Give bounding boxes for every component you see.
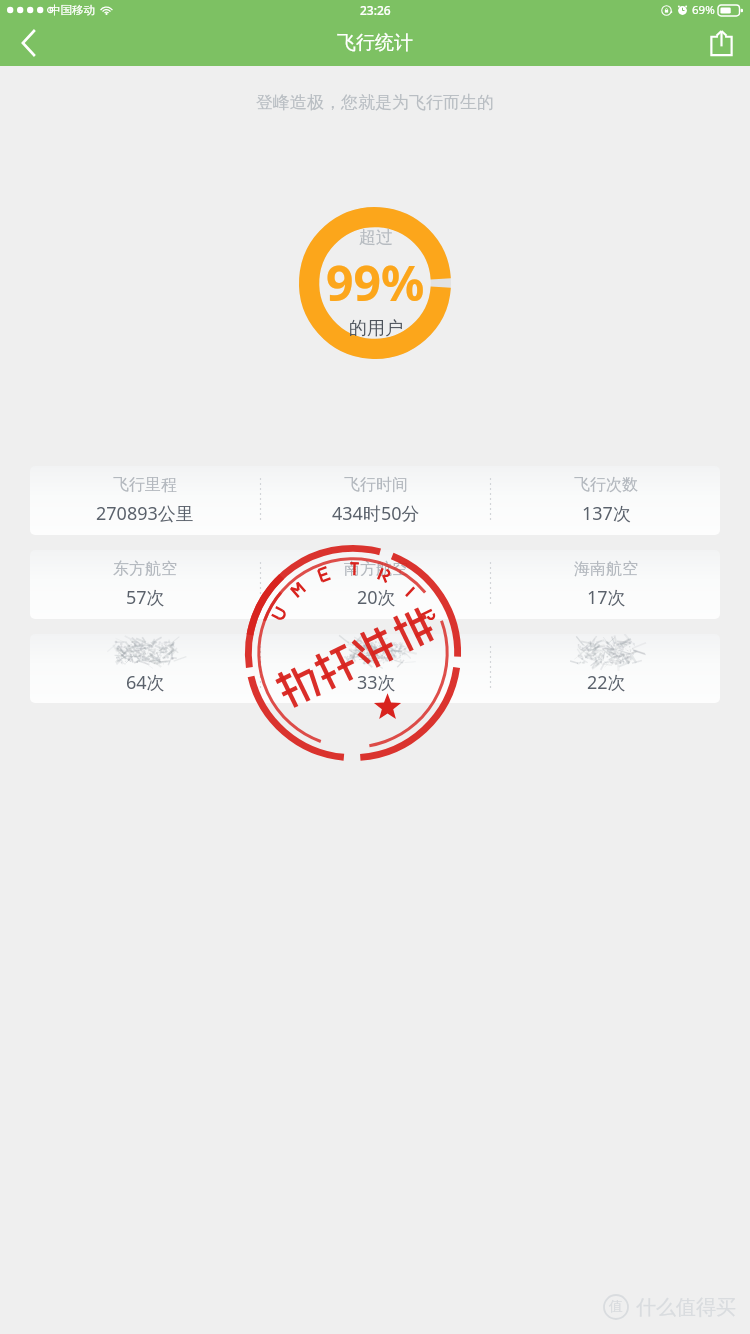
staticText: 的用户 (349, 317, 403, 340)
staticText: 17次 (587, 585, 626, 610)
staticText: 飞行里程 (113, 475, 177, 495)
button[interactable]: 64次 (30, 634, 720, 703)
button[interactable]: Back (0, 20, 58, 66)
staticText: 东方航空 (113, 559, 177, 579)
button[interactable]: Share (692, 20, 750, 66)
staticText: 飞行次数 (574, 475, 638, 495)
staticText: 137次 (582, 501, 631, 526)
staticText: 值 (609, 1298, 623, 1316)
staticText: 南方航空 (344, 559, 408, 579)
staticText: 69% (692, 2, 715, 18)
staticText: 270893公里 (96, 501, 194, 526)
staticText: 登峰造极，您就是为飞行而生的 (0, 92, 750, 113)
staticText: 飞行时间 (344, 475, 408, 495)
staticText: 33次 (357, 670, 396, 695)
staticText: 超过 (359, 227, 393, 248)
button[interactable]: 飞行里程 (30, 466, 720, 535)
staticText: 57次 (126, 585, 165, 610)
staticText: 22次 (587, 670, 626, 695)
staticText: 海南航空 (574, 559, 638, 579)
staticText: 中国移动 (49, 3, 95, 17)
staticText: 飞行统计 (337, 31, 413, 55)
button[interactable]: 东方航空 (30, 550, 720, 619)
staticText: 23:26 (360, 2, 391, 18)
staticText: 什么值得买 (636, 1295, 736, 1320)
staticText: 434时50分 (332, 501, 420, 526)
staticText: 99% (326, 250, 425, 315)
staticText: 64次 (126, 670, 165, 695)
staticText: 20次 (357, 585, 396, 610)
